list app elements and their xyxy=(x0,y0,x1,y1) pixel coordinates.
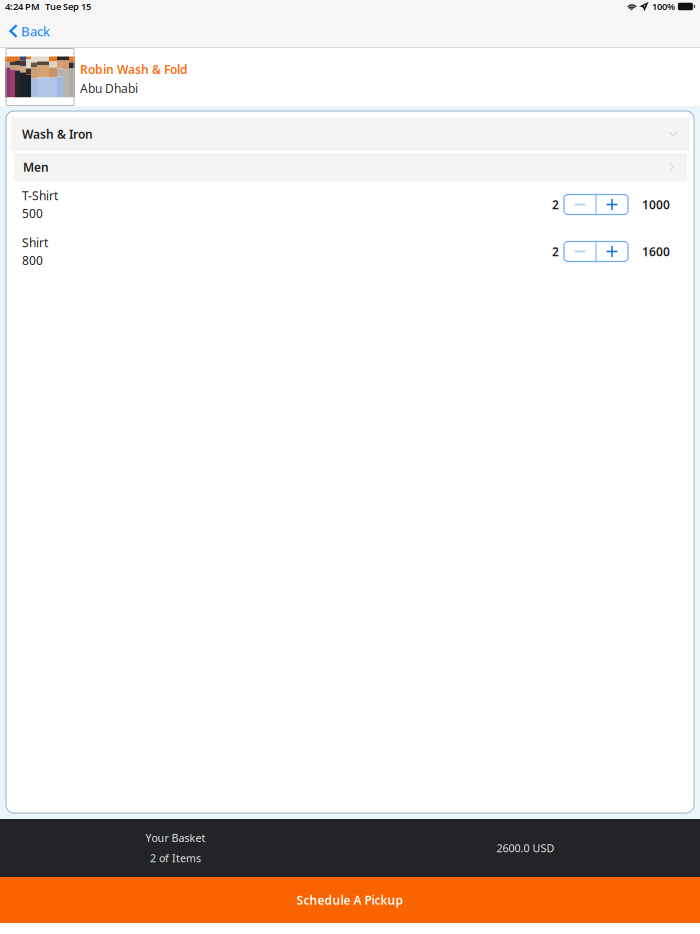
button[interactable]: Schedule A Pickup xyxy=(0,877,700,923)
staticText: 2 of Items xyxy=(150,851,201,865)
staticText: Schedule A Pickup xyxy=(296,892,403,908)
staticText: Robin Wash & Fold xyxy=(80,61,188,77)
staticText: 2 xyxy=(552,196,559,212)
staticText: Wash & Iron xyxy=(22,126,93,142)
button[interactable]: Decrease quantity xyxy=(564,194,595,214)
staticText: 500 xyxy=(22,205,43,221)
button[interactable]: Increase quantity xyxy=(596,194,627,214)
staticText: Back xyxy=(21,22,50,40)
staticText: T-Shirt xyxy=(22,188,58,203)
staticText: Shirt xyxy=(22,235,48,250)
staticText: Men xyxy=(23,159,49,175)
staticText: Abu Dhabi xyxy=(80,80,138,96)
button[interactable]: Increase quantity xyxy=(596,241,627,261)
staticText: 4:24 PM xyxy=(5,0,40,13)
staticText: 2600.0 USD xyxy=(496,841,554,855)
staticText: 2 xyxy=(552,243,559,259)
button[interactable]: Men xyxy=(14,153,687,181)
button[interactable]: Back xyxy=(0,17,60,48)
staticText: 1600 xyxy=(642,243,670,259)
staticText: 800 xyxy=(22,252,43,268)
staticText: 100% xyxy=(652,0,675,13)
staticText: Your Basket xyxy=(145,831,205,845)
button[interactable]: Wash & Iron xyxy=(11,117,690,151)
staticText: Tue Sep 15 xyxy=(45,0,91,13)
button[interactable]: Decrease quantity xyxy=(564,241,595,261)
staticText: 1000 xyxy=(642,196,670,212)
